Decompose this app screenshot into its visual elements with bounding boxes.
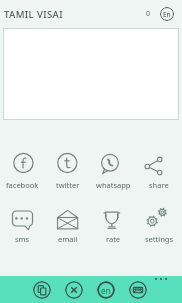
staticText: facebook	[6, 180, 39, 190]
staticText: settings	[145, 234, 174, 244]
staticText: email	[58, 234, 78, 244]
staticText: TAMIL VISAI	[4, 8, 63, 21]
button[interactable]	[155, 278, 167, 280]
button[interactable]	[33, 281, 51, 299]
staticText: En	[163, 10, 171, 19]
button[interactable]: twitter	[45, 152, 90, 190]
button[interactable]: whatsapp	[90, 152, 136, 190]
button[interactable]: en	[97, 281, 115, 299]
staticText: whatsapp	[96, 180, 131, 190]
button[interactable]: En	[160, 7, 174, 21]
button[interactable]	[129, 281, 147, 299]
button[interactable]	[3, 28, 179, 120]
button[interactable]: rate	[90, 206, 136, 244]
button[interactable]: share	[136, 152, 182, 190]
staticText: share	[149, 180, 169, 190]
button[interactable]	[65, 281, 83, 299]
staticText: 0	[146, 9, 151, 19]
button[interactable]: settings	[136, 206, 182, 244]
staticText: rate	[106, 234, 121, 244]
button[interactable]: email	[45, 206, 90, 244]
staticText: en	[101, 285, 111, 296]
button[interactable]: facebook	[0, 152, 45, 190]
button[interactable]: sms	[0, 206, 45, 244]
staticText: twitter	[56, 180, 80, 190]
staticText: sms	[15, 234, 30, 244]
